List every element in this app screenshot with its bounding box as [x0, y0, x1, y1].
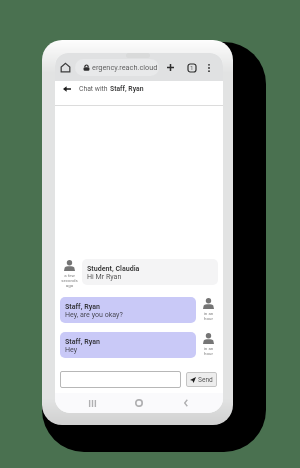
button[interactable] [60, 371, 181, 388]
staticText: Staff, Ryan [110, 85, 144, 93]
staticText: Staff, Ryan [65, 302, 100, 310]
staticText: Staff, Ryan [65, 337, 100, 345]
staticText: 1 [190, 64, 194, 71]
staticText: in an hour [199, 311, 218, 321]
button[interactable]: Student, Claudia [82, 259, 218, 285]
staticText: a few seconds ago [60, 273, 79, 288]
staticText: Chat with [79, 85, 110, 93]
button[interactable]: New tab [164, 61, 177, 74]
button[interactable]: Staff, Ryan [60, 332, 196, 358]
button[interactable]: Home [130, 394, 148, 412]
button[interactable]: Send [186, 372, 217, 387]
button[interactable]: Tabs [185, 61, 198, 74]
button[interactable]: Back [59, 81, 75, 97]
staticText: Student, Claudia [87, 264, 140, 272]
button[interactable]: More options [203, 62, 214, 73]
button[interactable]: Back [177, 394, 195, 412]
staticText: Hey, are you okay? [65, 310, 123, 318]
button[interactable]: ergency.reach.cloud [75, 59, 159, 76]
staticText: Send [198, 376, 213, 384]
button[interactable]: Recent apps [83, 394, 101, 412]
staticText: in an hour [199, 346, 218, 356]
button[interactable]: Staff, Ryan [60, 297, 196, 323]
staticText: Hey [65, 345, 78, 353]
button[interactable]: Home page [58, 60, 72, 74]
staticText: ergency.reach.cloud [92, 63, 158, 72]
staticText: Hi Mr Ryan [87, 272, 122, 280]
